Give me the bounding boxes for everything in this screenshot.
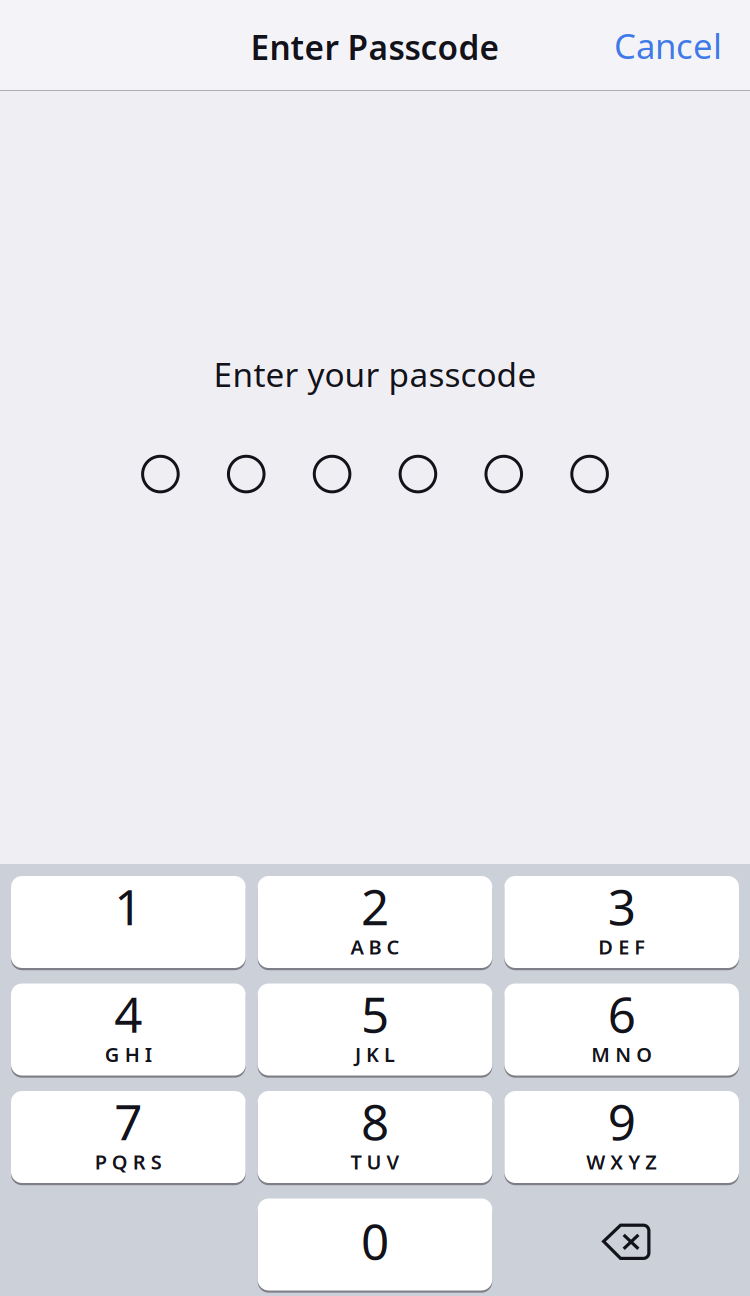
- staticText: A B C: [350, 933, 399, 960]
- staticText: W X Y Z: [586, 1148, 657, 1175]
- staticText: G H I: [105, 1041, 152, 1067]
- staticText: Enter Passcode: [250, 25, 499, 69]
- staticText: P Q R S: [95, 1148, 162, 1175]
- staticText: Enter your passcode: [213, 352, 536, 396]
- button[interactable]: 2: [258, 876, 492, 970]
- button[interactable]: 8: [258, 1091, 492, 1185]
- staticText: 1: [114, 873, 142, 939]
- staticText: Cancel: [614, 22, 722, 68]
- staticText: M N O: [591, 1041, 652, 1067]
- staticText: 4: [114, 981, 142, 1046]
- staticText: 5: [361, 981, 389, 1046]
- button[interactable]: Delete: [504, 1198, 739, 1292]
- button[interactable]: 0: [258, 1198, 492, 1292]
- button[interactable]: Cancel: [600, 10, 736, 80]
- button[interactable]: 1: [11, 876, 246, 970]
- staticText: J K L: [355, 1041, 395, 1067]
- staticText: 8: [361, 1088, 389, 1154]
- button[interactable]: 9: [504, 1091, 739, 1185]
- button[interactable]: 5: [258, 983, 492, 1077]
- staticText: 7: [114, 1088, 142, 1154]
- button[interactable]: 6: [504, 983, 739, 1077]
- staticText: 2: [361, 873, 389, 939]
- staticText: D E F: [598, 933, 645, 960]
- staticText: T U V: [350, 1148, 399, 1175]
- button[interactable]: 3: [504, 876, 739, 970]
- staticText: 0: [361, 1208, 389, 1273]
- staticText: 9: [608, 1088, 636, 1154]
- staticText: 3: [608, 873, 636, 939]
- staticText: 6: [608, 981, 636, 1046]
- button[interactable]: 4: [11, 983, 246, 1077]
- button[interactable]: 7: [11, 1091, 246, 1185]
